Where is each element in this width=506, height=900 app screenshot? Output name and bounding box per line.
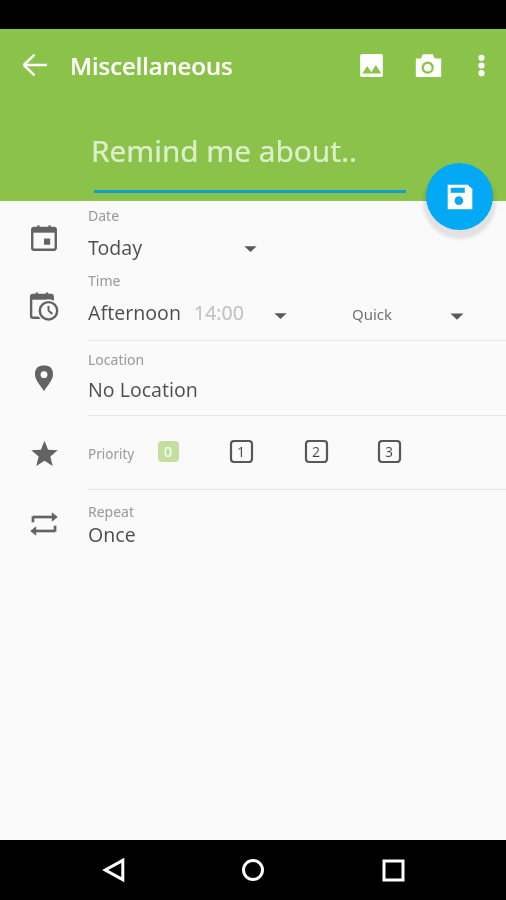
button[interactable]: Remind me about.. [91,122,406,193]
button[interactable]: 1 [231,441,252,462]
button[interactable]: Date [88,206,506,276]
button[interactable] [0,416,506,484]
button[interactable]: 3 [379,441,400,462]
button[interactable]: More options [456,29,506,101]
staticText: Repeat [88,502,135,521]
button[interactable]: Take photo [400,29,456,101]
staticText: 3 [385,442,394,461]
staticText: Time [88,271,121,290]
staticText: Priority [88,445,135,463]
staticText: Location [88,350,145,369]
button[interactable]: 2 [306,441,327,462]
staticText: 1 [237,442,246,461]
staticText: Date [88,206,120,225]
button[interactable]: Time [88,271,506,339]
button[interactable]: Add image [343,29,400,101]
button[interactable]: Quick [340,292,480,336]
staticText: Once [88,521,136,548]
staticText: Afternoon [88,299,181,326]
button[interactable]: 0 [158,441,179,462]
staticText: Quick [352,304,393,324]
staticText: 14:00 [194,299,244,326]
staticText: Remind me about.. [91,130,357,171]
staticText: Today [88,234,143,261]
staticText: 0 [164,442,173,461]
button[interactable]: Location [88,350,506,414]
staticText: 2 [312,442,321,461]
button[interactable]: Save [426,163,493,230]
staticText: Miscellaneous [70,49,233,82]
staticText: No Location [88,376,198,403]
button[interactable]: Back [88,844,140,896]
button[interactable]: Back [0,29,70,101]
button[interactable]: Repeat [88,502,506,564]
button[interactable]: Recent apps [367,844,419,896]
button[interactable]: Home [227,844,279,896]
